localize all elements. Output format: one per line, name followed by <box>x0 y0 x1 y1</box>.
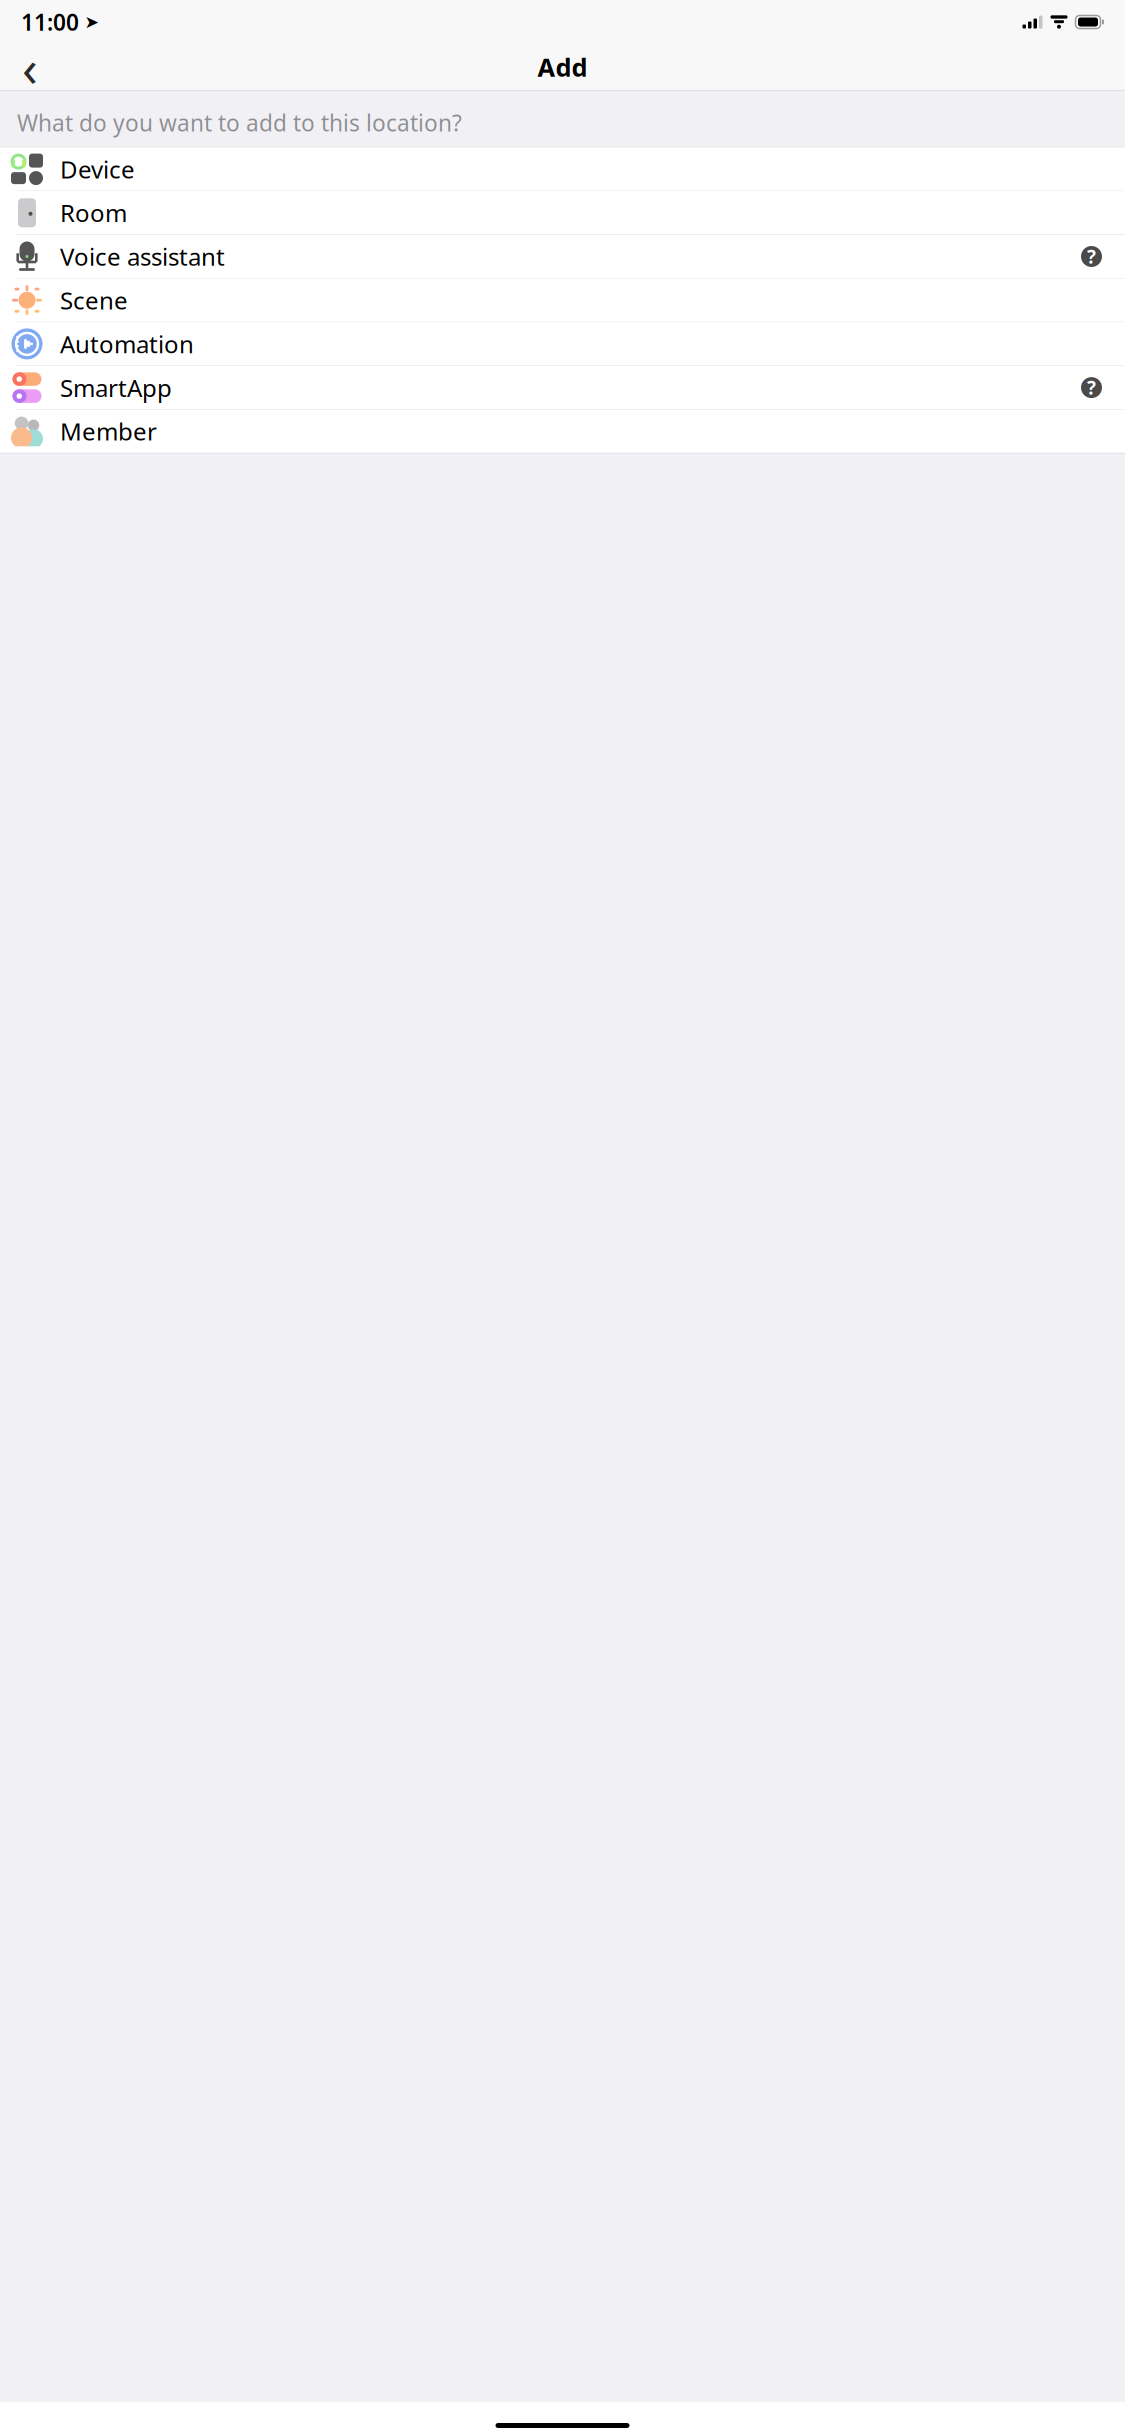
staticText: Member <box>60 415 157 447</box>
staticText: Scene <box>60 284 128 316</box>
staticText: ? <box>1087 244 1096 269</box>
button[interactable]: Back <box>4 45 56 89</box>
staticText: Room <box>60 197 127 229</box>
staticText: ‹ <box>22 33 38 101</box>
button[interactable]: Automation <box>0 322 1125 365</box>
staticText: Automation <box>60 328 194 360</box>
staticText: Device <box>60 153 135 185</box>
staticText: 11:00 <box>21 7 79 37</box>
button[interactable]: Member <box>0 410 1125 453</box>
staticText: ➤ <box>84 12 99 32</box>
staticText: ? <box>1087 375 1096 400</box>
button[interactable]: Voice assistant <box>0 235 1125 278</box>
button[interactable]: SmartApp <box>0 366 1125 409</box>
staticText: Voice assistant <box>60 241 225 272</box>
staticText: SmartApp <box>60 372 172 404</box>
staticText: What do you want to add to this location… <box>17 108 462 138</box>
button[interactable]: Scene <box>0 279 1125 322</box>
button[interactable]: Device <box>0 148 1125 191</box>
staticText: Add <box>537 50 587 84</box>
button[interactable]: Room <box>0 191 1125 234</box>
